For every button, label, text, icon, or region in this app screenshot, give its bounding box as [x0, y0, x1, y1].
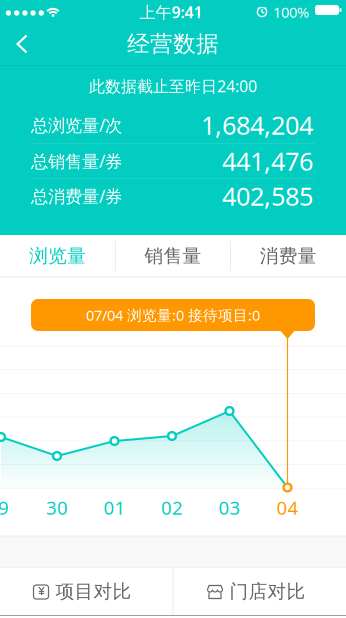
- staticText: 04: [276, 495, 298, 520]
- staticText: 此数据截止至昨日24:00: [89, 75, 257, 97]
- button[interactable]: 门店对比: [170, 568, 342, 615]
- staticText: 02: [161, 495, 183, 520]
- staticText: 441,476: [222, 144, 313, 178]
- staticText: 01: [103, 495, 125, 520]
- staticText: 总浏览量/次: [31, 113, 122, 136]
- staticText: 30: [46, 495, 68, 520]
- staticText: 消费量: [260, 244, 317, 267]
- staticText: 总销售量/券: [31, 149, 122, 172]
- button[interactable]: 消费量: [231, 235, 346, 277]
- button[interactable]: 销售量: [115, 235, 230, 277]
- staticText: 上午9:41: [139, 1, 202, 23]
- button[interactable]: 浏览量: [0, 235, 115, 277]
- staticText: 门店对比: [229, 580, 305, 603]
- staticText: 总消费量/券: [31, 184, 122, 207]
- staticText: 29: [0, 495, 9, 520]
- staticText: 402,585: [222, 179, 313, 213]
- staticText: 经营数据: [127, 30, 219, 58]
- staticText: 销售量: [144, 244, 201, 267]
- staticText: 07/04 浏览量:0 接待项目:0: [86, 305, 260, 325]
- staticText: 项目对比: [55, 580, 131, 603]
- staticText: 100%: [273, 2, 309, 22]
- button[interactable]: Back: [4, 26, 40, 62]
- button[interactable]: 项目对比: [0, 568, 168, 615]
- staticText: 03: [218, 495, 240, 520]
- staticText: 浏览量: [29, 244, 86, 267]
- staticText: 1,684,204: [201, 108, 313, 142]
